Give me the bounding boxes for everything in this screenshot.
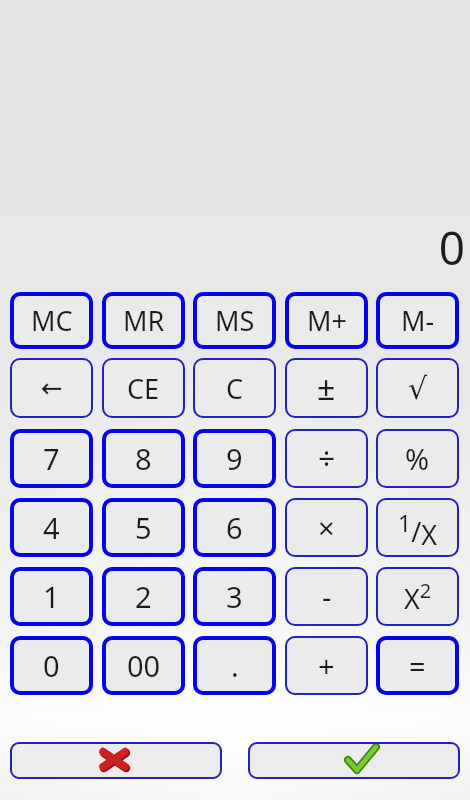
button[interactable]: 00 <box>102 636 185 695</box>
button[interactable]: % <box>376 429 459 488</box>
button[interactable]: MC <box>10 292 93 349</box>
button[interactable]: M- <box>376 292 459 349</box>
button[interactable]: 9 <box>193 429 276 488</box>
button[interactable]: = <box>376 636 459 695</box>
staticText: 3 <box>226 577 243 616</box>
staticText: 9 <box>226 439 243 478</box>
staticText: C <box>226 370 244 407</box>
staticText: 1/X <box>398 507 438 553</box>
staticText: - <box>322 577 332 616</box>
button[interactable]: CE <box>102 358 185 418</box>
button[interactable]: ← <box>10 358 93 418</box>
staticText: 1 <box>43 577 60 616</box>
button[interactable]: 2 <box>102 567 185 626</box>
staticText: MC <box>31 302 73 339</box>
staticText: ← <box>41 373 63 403</box>
button[interactable]: 4 <box>10 498 93 557</box>
button[interactable]: ÷ <box>285 429 368 488</box>
button[interactable]: √ <box>376 358 459 418</box>
staticText: M+ <box>307 302 347 339</box>
button[interactable]: 7 <box>10 429 93 488</box>
staticText: ± <box>317 366 336 410</box>
staticText: 6 <box>226 508 243 547</box>
button[interactable]: 6 <box>193 498 276 557</box>
staticText: = <box>409 646 426 685</box>
staticText: . <box>231 646 239 685</box>
staticText: 0 <box>43 646 60 685</box>
button[interactable]: MS <box>193 292 276 349</box>
button[interactable]: × <box>285 498 368 557</box>
button[interactable]: + <box>285 636 368 695</box>
button[interactable]: 8 <box>102 429 185 488</box>
staticText: X2 <box>404 577 432 617</box>
button[interactable] <box>248 742 460 779</box>
button[interactable] <box>10 742 222 779</box>
button[interactable]: 0 <box>10 636 93 695</box>
button[interactable]: 1 <box>10 567 93 626</box>
staticText: 7 <box>43 439 60 478</box>
button[interactable]: 5 <box>102 498 185 557</box>
button[interactable]: 3 <box>193 567 276 626</box>
staticText: 2 <box>135 577 152 616</box>
staticText: % <box>405 439 430 478</box>
staticText: 0 <box>0 216 465 279</box>
staticText: MS <box>215 302 255 339</box>
button[interactable]: M+ <box>285 292 368 349</box>
staticText: √ <box>408 371 428 406</box>
staticText: M- <box>401 302 435 339</box>
staticText: CE <box>127 370 160 407</box>
button[interactable]: MR <box>102 292 185 349</box>
staticText: 00 <box>127 646 161 685</box>
button[interactable]: X2 <box>376 567 459 626</box>
staticText: 5 <box>135 508 152 547</box>
button[interactable]: C <box>193 358 276 418</box>
button[interactable]: ± <box>285 358 368 418</box>
staticText: + <box>318 646 335 685</box>
staticText: 8 <box>135 439 152 478</box>
button[interactable]: - <box>285 567 368 626</box>
staticText: ÷ <box>318 438 336 479</box>
staticText: MR <box>123 302 165 339</box>
button[interactable]: 1/X <box>376 498 459 557</box>
button[interactable]: . <box>193 636 276 695</box>
staticText: × <box>318 508 335 547</box>
staticText: 4 <box>43 508 60 547</box>
